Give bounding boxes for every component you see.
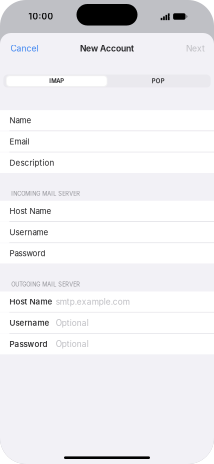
button[interactable]: Password bbox=[0, 334, 214, 354]
staticText: POP bbox=[152, 78, 165, 85]
button[interactable]: Cancel bbox=[0, 37, 47, 59]
staticText: OUTGOING MAIL SERVER bbox=[11, 281, 80, 288]
button[interactable]: POP bbox=[107, 74, 209, 88]
button[interactable]: Email bbox=[0, 131, 214, 152]
button[interactable]: Username bbox=[0, 222, 214, 242]
button[interactable]: Password bbox=[0, 243, 214, 264]
staticText: Cancel bbox=[11, 43, 39, 53]
button[interactable]: IMAP bbox=[6, 75, 107, 87]
button[interactable]: Host Name bbox=[0, 201, 214, 221]
staticText: Next bbox=[186, 43, 205, 53]
staticText: Password bbox=[9, 249, 45, 258]
staticText: Host Name bbox=[9, 297, 52, 307]
staticText: New Account bbox=[80, 43, 134, 53]
staticText: Name bbox=[9, 115, 31, 125]
staticText: INCOMING MAIL SERVER bbox=[11, 190, 80, 197]
staticText: 10:00 bbox=[28, 11, 53, 22]
staticText: Username bbox=[9, 227, 48, 237]
staticText: Optional bbox=[56, 339, 89, 349]
staticText: Username bbox=[9, 318, 49, 328]
staticText: Host Name bbox=[9, 206, 51, 216]
staticText: Email bbox=[9, 137, 29, 146]
button[interactable]: Username bbox=[0, 313, 214, 333]
button[interactable]: Description bbox=[0, 152, 214, 173]
button[interactable]: Name bbox=[0, 110, 214, 131]
button[interactable]: Next bbox=[178, 37, 214, 59]
staticText: Password bbox=[9, 339, 47, 349]
staticText: IMAP bbox=[49, 78, 64, 85]
staticText: Description bbox=[9, 158, 54, 168]
staticText: smtp.example.com bbox=[56, 297, 130, 307]
button[interactable]: Host Name bbox=[0, 291, 214, 312]
staticText: Optional bbox=[56, 318, 89, 328]
